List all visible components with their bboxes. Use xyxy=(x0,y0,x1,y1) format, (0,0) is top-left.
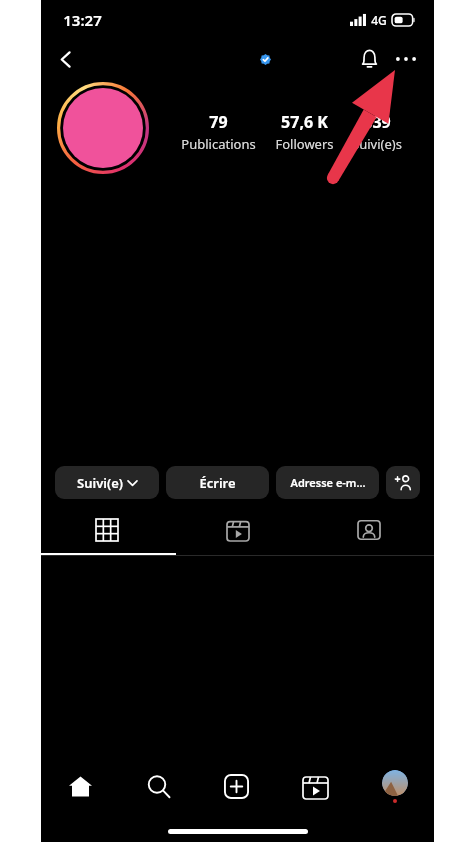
button[interactable]: 639 xyxy=(352,111,402,153)
button[interactable]: Tagged xyxy=(303,513,434,547)
staticText: 79 xyxy=(209,111,228,133)
staticText: Suivi(e) xyxy=(77,474,123,492)
staticText: 13:27 xyxy=(63,10,102,30)
staticText: Publications xyxy=(181,135,256,153)
button[interactable]: Écrire xyxy=(166,466,269,499)
button[interactable]: Back xyxy=(47,40,85,78)
button[interactable]: 57,6 K xyxy=(275,111,334,153)
button[interactable]: Reels xyxy=(276,758,355,814)
button[interactable]: Search xyxy=(119,758,197,814)
staticText: 4G xyxy=(371,12,387,28)
button[interactable]: Profile photo xyxy=(57,82,149,174)
button[interactable]: Grid xyxy=(41,513,172,547)
button[interactable]: Your profile xyxy=(355,758,434,814)
staticText: 639 xyxy=(363,111,391,133)
button[interactable]: 79 xyxy=(181,111,256,153)
button[interactable]: More options xyxy=(388,41,424,77)
button[interactable]: Add person xyxy=(386,466,420,499)
staticText: Écrire xyxy=(199,474,236,492)
button[interactable]: Create xyxy=(197,758,276,814)
button[interactable]: Reels xyxy=(172,513,303,547)
staticText: Followers xyxy=(275,135,334,153)
staticText: 57,6 K xyxy=(281,111,328,133)
staticText: Adresse e-m... xyxy=(290,475,366,490)
button[interactable]: Adresse e-m... xyxy=(276,466,379,499)
staticText: Suivi(e)s xyxy=(352,135,402,153)
button[interactable]: Suivi(e) xyxy=(55,466,159,499)
button[interactable]: Notifications xyxy=(350,40,388,78)
button[interactable]: Home xyxy=(41,758,119,814)
